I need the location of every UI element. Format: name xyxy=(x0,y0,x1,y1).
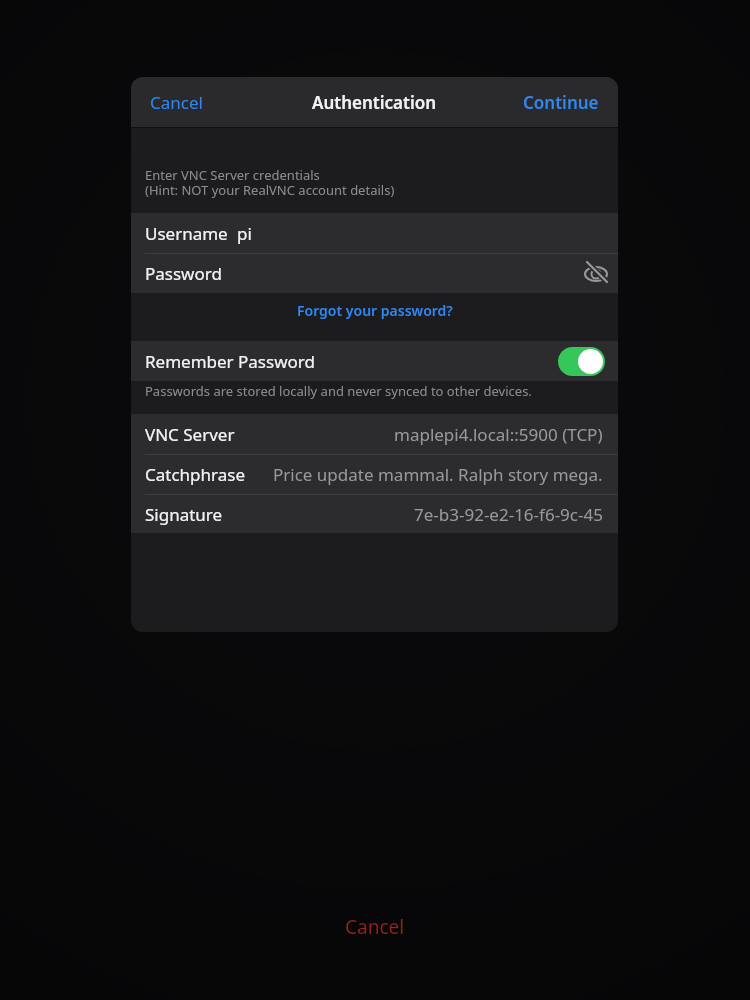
staticText: Enter VNC Server credentials (Hint: NOT … xyxy=(145,166,395,199)
button[interactable]: VNC Server xyxy=(145,414,603,454)
staticText: Catchphrase xyxy=(145,463,245,486)
staticText: Cancel xyxy=(150,91,203,114)
button[interactable] xyxy=(558,347,605,376)
staticText: Cancel xyxy=(345,914,405,940)
staticText: maplepi4.local::5900 (TCP) xyxy=(394,423,603,446)
button[interactable]: Cancel xyxy=(150,91,203,114)
button[interactable]: Forgot your password? xyxy=(297,301,453,320)
staticText: 7e-b3-92-e2-16-f6-9c-45 xyxy=(414,503,603,526)
button[interactable]: Cancel xyxy=(345,914,405,940)
staticText: Continue xyxy=(523,91,599,114)
button[interactable] xyxy=(583,261,609,287)
staticText: VNC Server xyxy=(145,423,235,446)
staticText: Username xyxy=(145,222,228,245)
button[interactable]: Password xyxy=(145,254,609,293)
staticText: Remember Password xyxy=(145,350,315,373)
button[interactable]: Signature xyxy=(145,495,603,533)
staticText: Price update mammal. Ralph story mega. xyxy=(273,463,603,486)
staticText: Password xyxy=(145,262,222,285)
staticText: Passwords are stored locally and never s… xyxy=(145,382,532,400)
button[interactable]: Catchphrase xyxy=(145,455,603,494)
button[interactable]: Username xyxy=(131,213,618,253)
staticText: Signature xyxy=(145,503,223,526)
button[interactable]: Continue xyxy=(523,91,599,114)
staticText: Authentication xyxy=(312,91,437,114)
staticText: pi xyxy=(237,222,252,245)
button[interactable]: Remember Password xyxy=(145,341,605,381)
staticText: Forgot your password? xyxy=(297,301,453,320)
